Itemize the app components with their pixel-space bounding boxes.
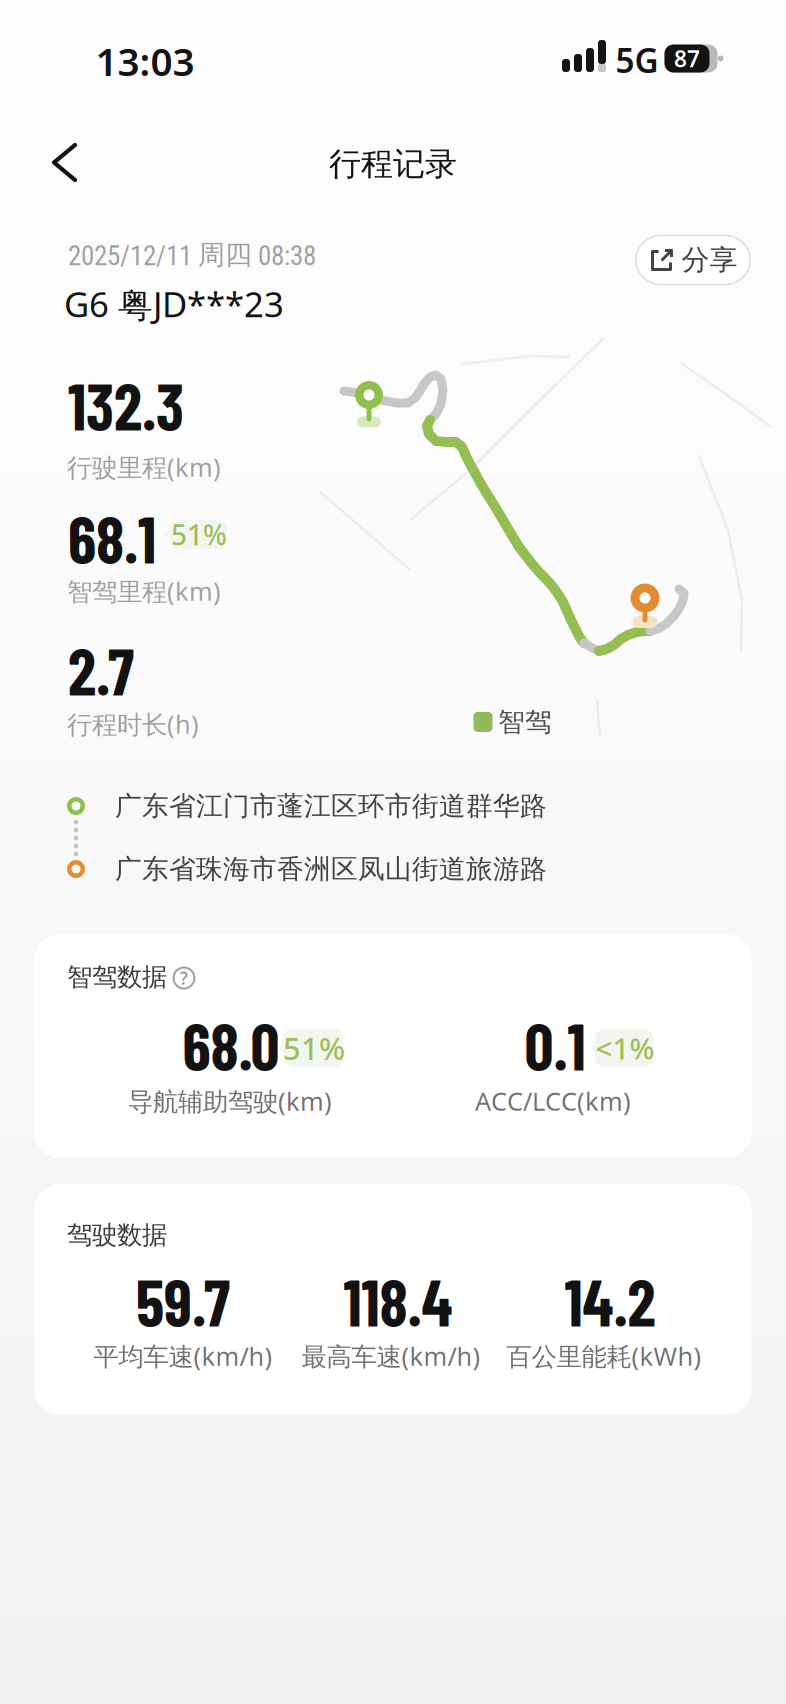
- button[interactable]: 分享: [636, 235, 750, 284]
- staticText: 智驾数据: [67, 961, 167, 992]
- staticText: 51%: [283, 1028, 345, 1068]
- staticText: ACC/LCC(km): [475, 1084, 631, 1118]
- staticText: 驾驶数据: [67, 1219, 167, 1250]
- staticText: 13:03: [95, 35, 194, 87]
- staticText: ?: [180, 966, 188, 989]
- staticText: 68.1: [68, 500, 156, 576]
- staticText: G6 粤JD***23: [64, 281, 284, 327]
- staticText: 14.2: [564, 1263, 655, 1339]
- staticText: 分享: [681, 243, 737, 277]
- staticText: 最高车速(km/h): [301, 1339, 480, 1373]
- staticText: 平均车速(km/h): [93, 1339, 272, 1373]
- staticText: 广东省江门市蓬江区环市街道群华路: [115, 790, 547, 822]
- staticText: 百公里能耗(kWh): [506, 1339, 701, 1373]
- staticText: <1%: [595, 1028, 654, 1067]
- staticText: 行程时长(h): [67, 707, 199, 741]
- staticText: 118.4: [343, 1263, 452, 1339]
- staticText: 2.7: [68, 632, 134, 708]
- staticText: 行驶里程(km): [67, 450, 221, 484]
- staticText: 2025/12/11 周四 08:38: [68, 238, 316, 272]
- staticText: 智驾: [498, 706, 552, 738]
- button[interactable]: 智驾数据说明: [166, 960, 202, 996]
- staticText: 导航辅助驾驶(km): [128, 1084, 332, 1118]
- button[interactable]: 返回: [32, 131, 96, 195]
- staticText: 87: [674, 43, 700, 73]
- staticText: 68.0: [182, 1007, 279, 1083]
- staticText: 0.1: [524, 1007, 585, 1083]
- staticText: 59.7: [136, 1263, 230, 1339]
- staticText: 132.3: [68, 367, 184, 443]
- staticText: 5G: [615, 38, 658, 82]
- staticText: 51%: [171, 516, 227, 553]
- staticText: 智驾里程(km): [67, 574, 221, 608]
- staticText: 广东省珠海市香洲区凤山街道旅游路: [115, 853, 547, 885]
- staticText: 行程记录: [329, 144, 457, 184]
